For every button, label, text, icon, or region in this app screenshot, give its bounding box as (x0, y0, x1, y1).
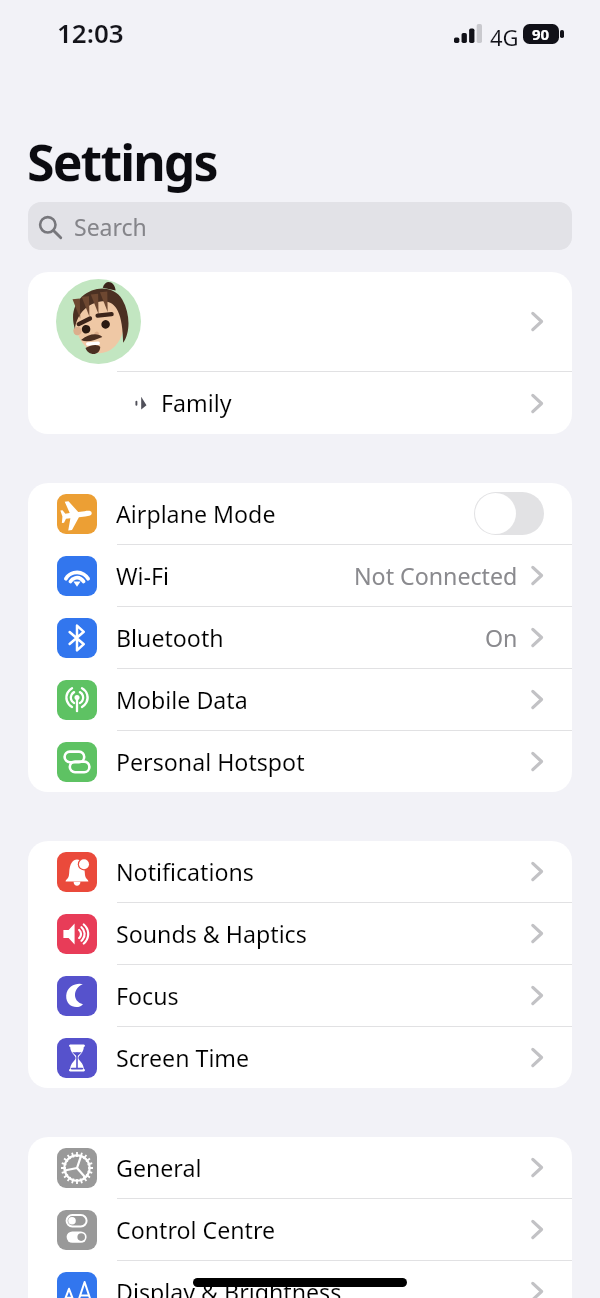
staticText: Sounds & Haptics (116, 918, 307, 950)
staticText: 90 (532, 24, 550, 44)
staticText: Focus (116, 980, 179, 1012)
staticText: Wi-Fi (116, 560, 170, 592)
button[interactable]: Mobile Data (28, 669, 572, 730)
button[interactable]: Apple ID, iCloud, Media & Purchases (28, 272, 572, 371)
button[interactable]: Family (28, 372, 572, 434)
button[interactable]: Search (28, 202, 572, 250)
button[interactable]: Notifications (28, 841, 572, 902)
staticText: On (485, 622, 518, 654)
staticText: Airplane Mode (116, 498, 276, 530)
button[interactable]: Bluetooth (28, 607, 572, 668)
staticText: Not Connected (354, 560, 518, 592)
button[interactable]: Airplane Mode toggle (474, 492, 544, 535)
staticText: Settings (27, 128, 217, 196)
staticText: 12:03 (57, 15, 124, 50)
staticText: Notifications (116, 856, 254, 888)
button[interactable]: Control Centre (28, 1199, 572, 1260)
button[interactable]: Focus (28, 965, 572, 1026)
staticText: Mobile Data (116, 684, 248, 716)
button[interactable]: Airplane Mode (28, 483, 572, 544)
button[interactable]: Personal Hotspot (28, 731, 572, 792)
button[interactable]: Display & Brightness (28, 1261, 572, 1298)
staticText: Control Centre (116, 1214, 276, 1246)
button[interactable]: General (28, 1137, 572, 1198)
button[interactable]: Screen Time (28, 1027, 572, 1088)
button[interactable]: Wi-Fi (28, 545, 572, 606)
staticText: Display & Brightness (116, 1276, 342, 1298)
staticText: Personal Hotspot (116, 746, 305, 778)
staticText: Family (161, 387, 232, 419)
staticText: Screen Time (116, 1042, 250, 1074)
staticText: Bluetooth (116, 622, 224, 654)
staticText: 4G (490, 22, 519, 52)
button[interactable]: Sounds & Haptics (28, 903, 572, 964)
staticText: Search (74, 211, 147, 242)
staticText: General (116, 1152, 202, 1184)
